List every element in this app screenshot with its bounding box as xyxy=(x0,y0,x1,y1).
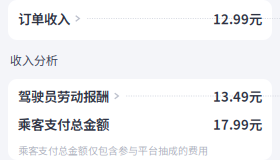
button[interactable]: 订单收入 xyxy=(8,4,272,32)
button[interactable]: 驾驶员劳动报酬 xyxy=(8,82,272,110)
button[interactable]: 乘客支付总金额 xyxy=(8,110,272,138)
staticText: 驾驶员劳动报酬 xyxy=(18,86,109,106)
staticText: 17.99元 xyxy=(213,114,262,134)
staticText: 乘客支付总金额仅包含参与平台抽成的费用 xyxy=(18,143,208,157)
staticText: 收入分析 xyxy=(10,51,58,68)
staticText: 12.99元 xyxy=(213,9,262,28)
staticText: 乘客支付总金额 xyxy=(18,114,109,134)
staticText: 订单收入 xyxy=(18,9,70,28)
staticText: 13.49元 xyxy=(213,86,262,106)
